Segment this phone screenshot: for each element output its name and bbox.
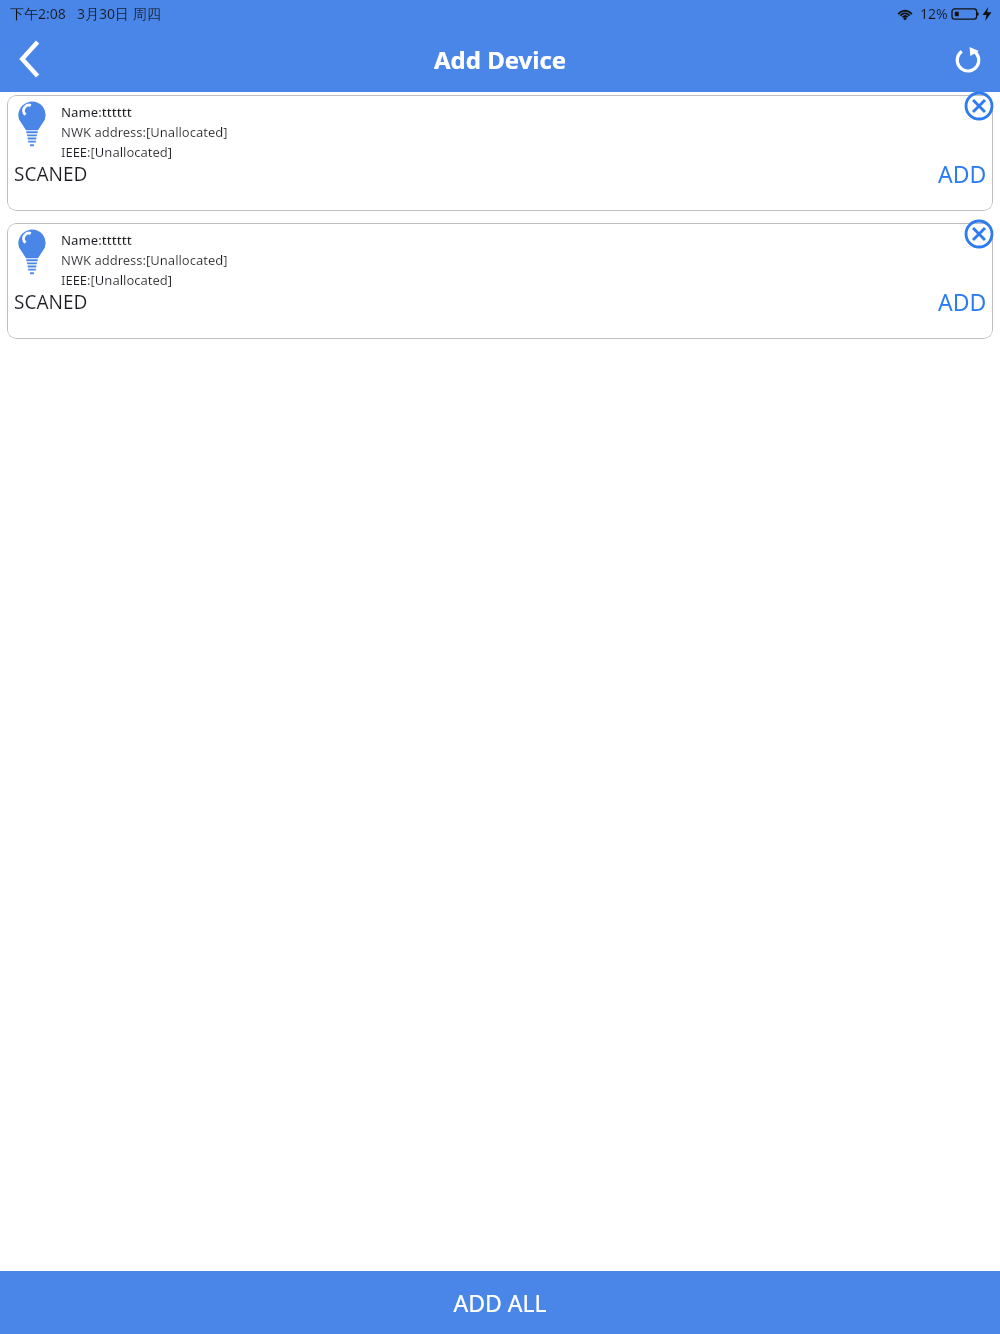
button[interactable]: Remove device — [960, 87, 998, 125]
button[interactable]: ADD — [934, 284, 991, 319]
staticText: 下午2:08 — [10, 4, 66, 23]
button[interactable]: Refresh — [936, 27, 1000, 91]
staticText: ADD ALL — [453, 1287, 547, 1318]
staticText: IEEE:[Unallocated] — [61, 271, 173, 289]
staticText: Add Device — [434, 43, 567, 76]
button[interactable]: Name:tttttt — [7, 223, 993, 339]
staticText: 3月30日 周四 — [77, 4, 161, 23]
staticText: 12% — [920, 4, 948, 23]
staticText: ADD — [938, 158, 987, 189]
button[interactable]: ADD — [934, 156, 991, 191]
button[interactable]: Back — [0, 28, 62, 90]
staticText: NWK address:[Unallocated] — [61, 123, 228, 141]
button[interactable]: ADD ALL — [0, 1271, 1000, 1334]
button[interactable]: Name:tttttt — [7, 95, 993, 211]
staticText: SCANED — [14, 161, 88, 187]
staticText: Name:tttttt — [61, 103, 132, 121]
staticText: ADD — [938, 286, 987, 317]
button[interactable]: Remove device — [960, 215, 998, 253]
staticText: NWK address:[Unallocated] — [61, 251, 228, 269]
staticText: SCANED — [14, 289, 88, 315]
staticText: IEEE:[Unallocated] — [61, 143, 173, 161]
staticText: Name:tttttt — [61, 231, 132, 249]
